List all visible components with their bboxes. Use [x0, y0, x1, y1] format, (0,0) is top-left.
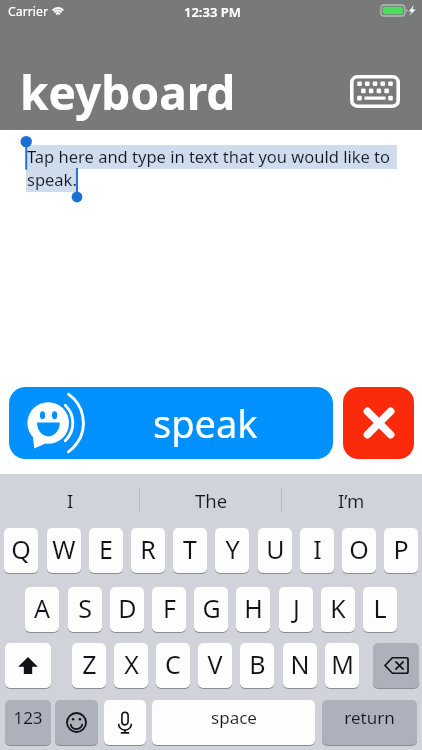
- staticText: S: [78, 591, 92, 625]
- staticText: A: [34, 591, 50, 625]
- button[interactable]: Dictation: [104, 700, 146, 745]
- button[interactable]: Q: [4, 528, 38, 573]
- staticText: P: [393, 532, 409, 566]
- button[interactable]: I: [0, 474, 141, 526]
- staticText: L: [373, 591, 387, 625]
- button[interactable]: G: [194, 587, 228, 632]
- button[interactable]: Clear: [343, 387, 414, 459]
- button[interactable]: I’m: [281, 474, 422, 526]
- button[interactable]: S: [68, 587, 102, 632]
- button[interactable]: M: [325, 643, 359, 688]
- button[interactable]: space: [152, 700, 315, 745]
- staticText: Carrier: [8, 3, 49, 20]
- button[interactable]: return: [322, 700, 417, 745]
- staticText: 123: [13, 706, 43, 729]
- staticText: 12:33 PM: [184, 3, 241, 21]
- button[interactable]: T: [173, 528, 207, 573]
- staticText: D: [118, 591, 137, 625]
- button[interactable]: The: [141, 474, 282, 526]
- button[interactable]: K: [321, 587, 355, 632]
- button[interactable]: H: [236, 587, 270, 632]
- staticText: Z: [82, 647, 97, 681]
- button[interactable]: I: [300, 528, 334, 573]
- staticText: keyboard: [20, 61, 236, 124]
- button[interactable]: O: [342, 528, 376, 573]
- button[interactable]: Y: [215, 528, 249, 573]
- button[interactable]: Shift: [5, 643, 51, 688]
- staticText: I’m: [338, 488, 365, 513]
- staticText: X: [124, 647, 139, 681]
- staticText: K: [330, 591, 346, 625]
- staticText: J: [293, 591, 300, 625]
- button[interactable]: J: [279, 587, 313, 632]
- button[interactable]: E: [89, 528, 123, 573]
- button[interactable]: V: [198, 643, 232, 688]
- staticText: F: [163, 591, 176, 625]
- staticText: Tap here and type in text that you would…: [27, 145, 407, 191]
- button[interactable]: F: [152, 587, 186, 632]
- button[interactable]: C: [156, 643, 190, 688]
- staticText: G: [202, 591, 221, 625]
- staticText: T: [183, 532, 197, 566]
- staticText: E: [99, 532, 113, 566]
- button[interactable]: D: [110, 587, 144, 632]
- button[interactable]: W: [47, 528, 81, 573]
- staticText: Y: [225, 532, 240, 566]
- staticText: V: [207, 647, 223, 681]
- button[interactable]: Backspace: [373, 643, 419, 688]
- staticText: H: [244, 591, 263, 625]
- button[interactable]: U: [258, 528, 292, 573]
- button[interactable]: Keyboard: [344, 69, 406, 114]
- button[interactable]: Z: [72, 643, 106, 688]
- staticText: M: [331, 647, 354, 681]
- button[interactable]: A: [25, 587, 59, 632]
- staticText: C: [165, 647, 181, 681]
- button[interactable]: P: [384, 528, 418, 573]
- staticText: return: [344, 706, 395, 729]
- button[interactable]: R: [131, 528, 165, 573]
- staticText: Q: [11, 532, 31, 566]
- staticText: R: [140, 532, 156, 566]
- staticText: N: [290, 647, 310, 681]
- staticText: B: [249, 647, 266, 681]
- button[interactable]: 123: [5, 700, 51, 745]
- button[interactable]: X: [114, 643, 148, 688]
- button[interactable]: Emoji: [55, 700, 98, 745]
- staticText: The: [195, 488, 228, 513]
- staticText: I: [67, 488, 74, 513]
- staticText: space: [211, 706, 257, 729]
- button[interactable]: L: [363, 587, 397, 632]
- staticText: O: [349, 532, 369, 566]
- staticText: W: [52, 532, 76, 566]
- button[interactable]: N: [283, 643, 317, 688]
- button[interactable]: B: [240, 643, 274, 688]
- button[interactable]: speak: [9, 387, 333, 459]
- staticText: U: [266, 532, 285, 566]
- staticText: speak: [153, 397, 258, 449]
- staticText: I: [313, 532, 322, 566]
